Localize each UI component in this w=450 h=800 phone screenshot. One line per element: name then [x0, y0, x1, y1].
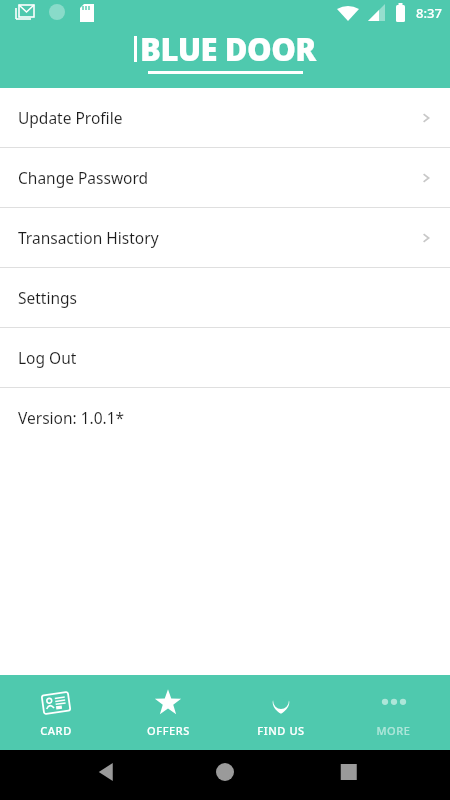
staticText: Change Password [18, 167, 149, 188]
button[interactable]: Change Password [0, 148, 450, 207]
staticText: CARD [40, 723, 72, 738]
button[interactable]: CARD [0, 675, 112, 750]
button[interactable]: Settings [0, 268, 450, 327]
button[interactable]: Log Out [0, 328, 450, 387]
button[interactable]: Update Profile [0, 88, 450, 147]
staticText: Update Profile [18, 107, 123, 128]
staticText: Transaction History [18, 227, 159, 248]
staticText: OFFERS [147, 723, 190, 738]
button[interactable]: OFFERS [112, 675, 224, 750]
staticText: Settings [18, 287, 77, 308]
button[interactable]: FIND US [224, 675, 337, 750]
staticText: Version: 1.0.1* [18, 407, 125, 428]
staticText: FIND US [257, 723, 305, 738]
staticText: 8:37 [416, 4, 442, 22]
staticText: Log Out [18, 347, 77, 368]
button[interactable]: Transaction History [0, 208, 450, 267]
staticText: MORE [376, 723, 411, 738]
staticText: BLUE DOOR [140, 28, 316, 70]
button[interactable]: MORE [337, 675, 450, 750]
